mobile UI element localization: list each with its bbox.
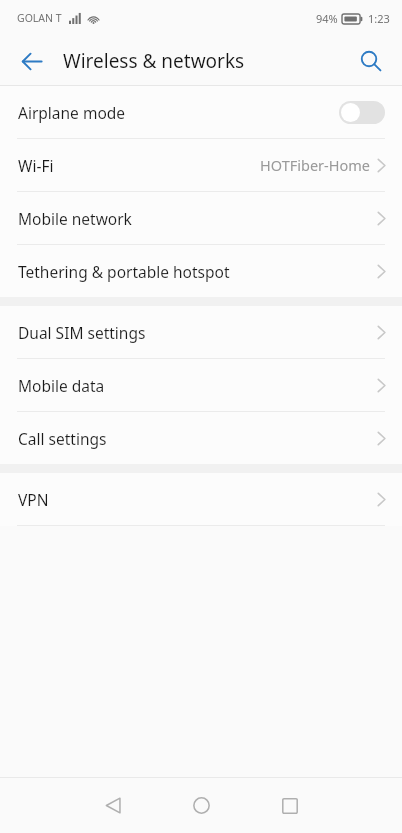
button[interactable]: Recent apps <box>268 778 312 833</box>
staticText: Mobile network <box>18 208 132 229</box>
staticText: Tethering & portable hotspot <box>18 261 230 282</box>
staticText: Airplane mode <box>18 102 126 123</box>
button[interactable]: Search <box>349 39 393 83</box>
button[interactable]: Wi-Fi <box>0 139 402 191</box>
staticText: Wi-Fi <box>18 155 54 176</box>
staticText: HOTFiber-Home <box>260 155 370 175</box>
button[interactable]: VPN <box>0 473 402 525</box>
staticText: 94% <box>316 11 338 26</box>
button[interactable]: Mobile network <box>0 192 402 244</box>
staticText: GOLAN T <box>17 11 62 25</box>
button[interactable]: Mobile data <box>0 359 402 411</box>
staticText: 1:23 <box>368 11 390 26</box>
staticText: Dual SIM settings <box>18 322 146 343</box>
staticText: Mobile data <box>18 375 105 396</box>
button[interactable]: Home <box>179 778 223 833</box>
button[interactable]: Back <box>9 39 53 83</box>
staticText: VPN <box>18 489 49 510</box>
button[interactable]: Back <box>91 778 135 833</box>
button[interactable]: Airplane mode toggle, off <box>339 101 385 124</box>
button[interactable]: Dual SIM settings <box>0 306 402 358</box>
staticText: Wireless & networks <box>63 48 245 74</box>
button[interactable]: Call settings <box>0 412 402 464</box>
staticText: Call settings <box>18 428 107 449</box>
button[interactable]: Tethering & portable hotspot <box>0 245 402 297</box>
button[interactable]: Airplane mode <box>0 86 402 138</box>
